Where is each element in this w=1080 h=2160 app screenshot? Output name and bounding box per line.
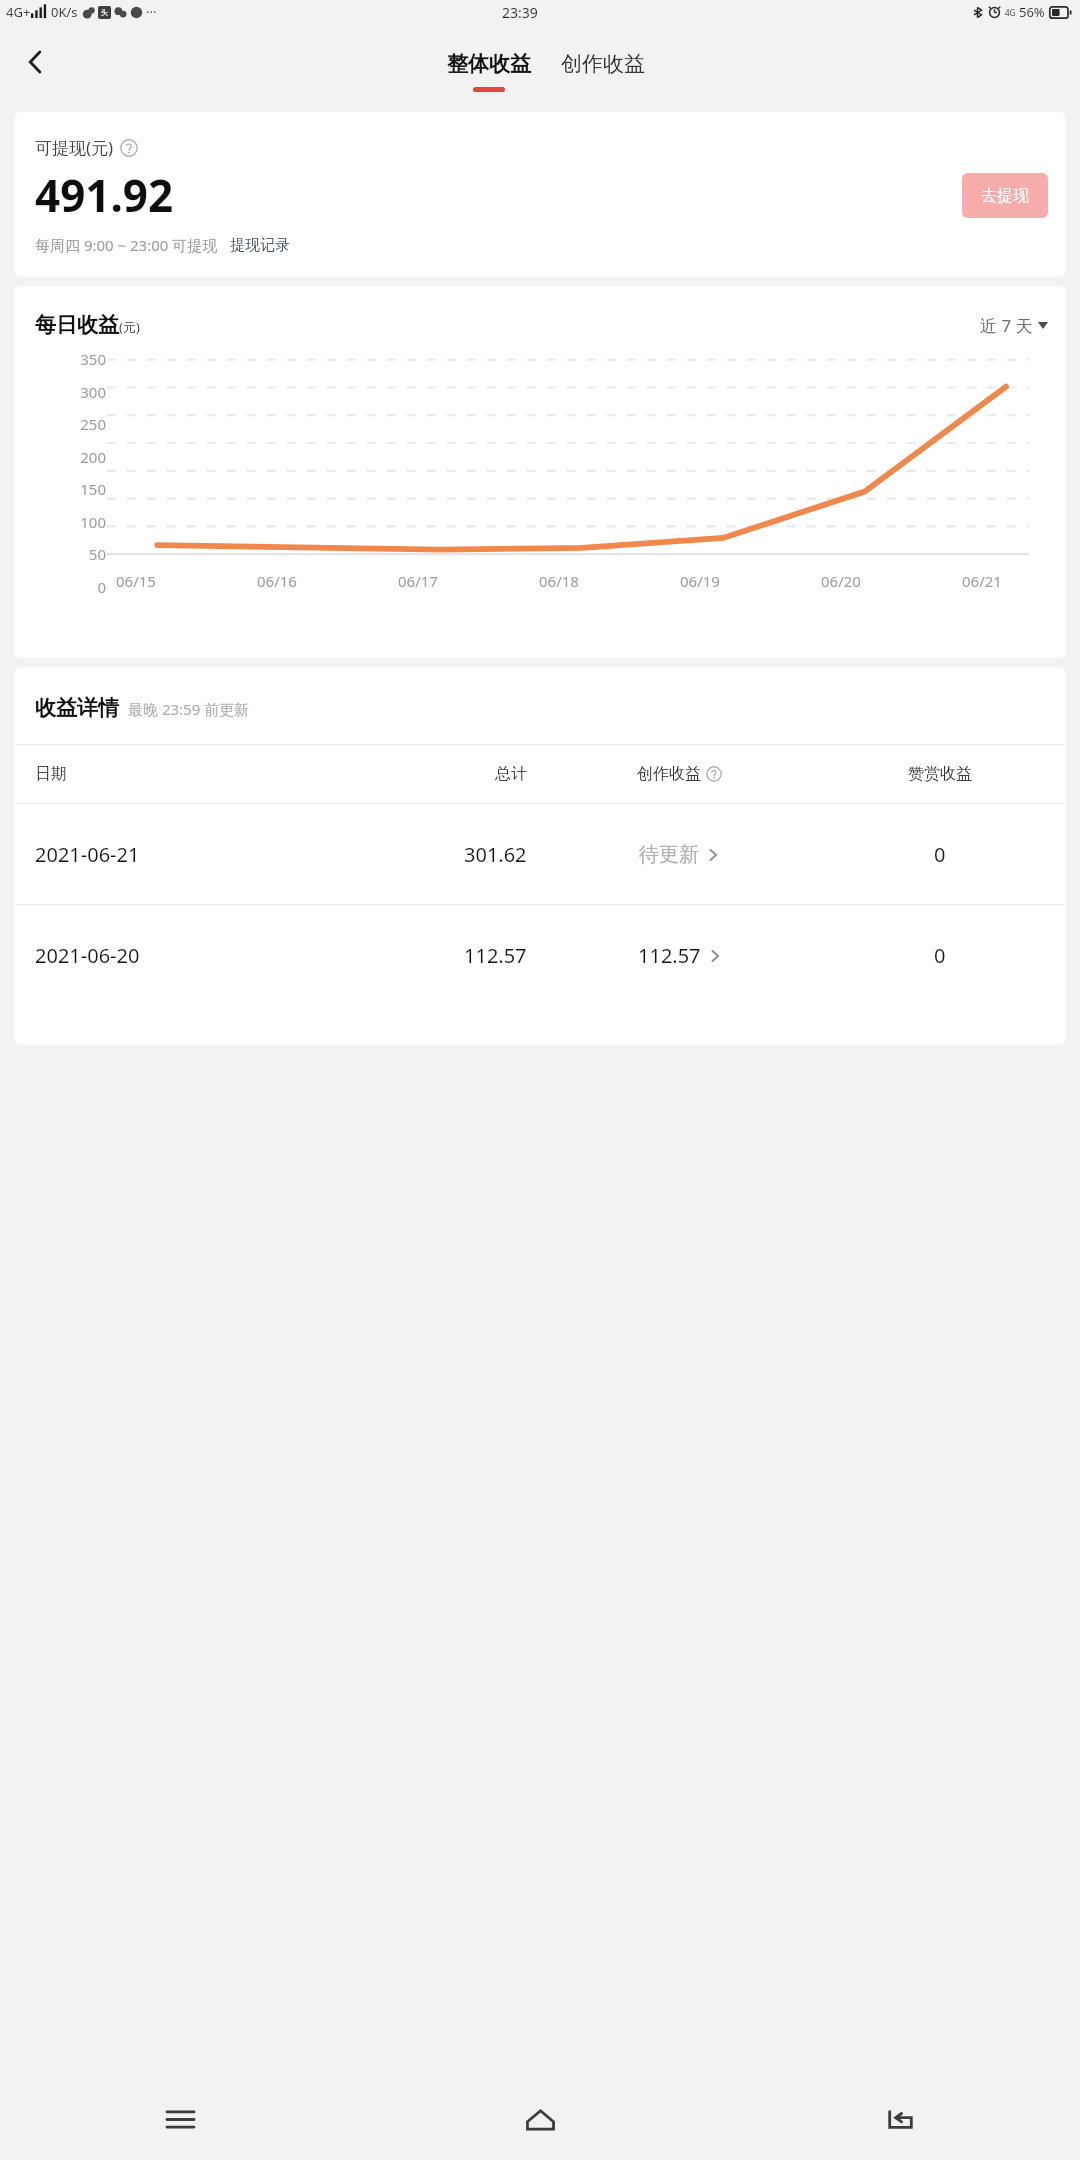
staticText: 日期: [35, 764, 330, 784]
staticText: 总计: [495, 764, 527, 784]
staticText: 去提现: [981, 186, 1029, 206]
staticText: 06/15: [116, 571, 156, 591]
staticText: ···: [146, 3, 157, 21]
staticText: 整体收益: [447, 51, 531, 77]
staticText: 0: [934, 942, 946, 969]
staticText: 最晚 23:59 前更新: [128, 699, 250, 719]
staticText: 06/16: [257, 571, 297, 591]
staticText: 50: [88, 544, 106, 564]
staticText: 300: [80, 382, 106, 402]
button[interactable]: 去提现: [962, 173, 1048, 218]
staticText: 创作收益: [561, 51, 645, 77]
staticText: 250: [80, 414, 106, 434]
button[interactable]: Home: [360, 2078, 720, 2160]
button[interactable]: About withdrawable balance: [120, 139, 138, 157]
button[interactable]: 提现记录: [230, 236, 290, 255]
staticText: 头: [101, 8, 108, 17]
staticText: 200: [80, 447, 106, 467]
button[interactable]: 整体收益: [447, 33, 531, 92]
staticText: 06/18: [539, 571, 579, 591]
staticText: 每周四 9:00 ~ 23:00 可提现: [35, 235, 218, 255]
staticText: 06/20: [821, 571, 861, 591]
staticText: 创作收益: [637, 764, 701, 784]
staticText: 0: [934, 841, 946, 868]
staticText: 赞赏收益: [908, 764, 972, 784]
staticText: 每日收益: [35, 312, 119, 338]
staticText: (元): [119, 318, 140, 336]
staticText: 56%: [1019, 3, 1045, 21]
staticText: 4G: [1005, 7, 1016, 18]
staticText: 06/21: [962, 571, 1002, 591]
staticText: 112.57: [638, 942, 701, 969]
staticText: 06/19: [680, 571, 720, 591]
button[interactable]: 2021-06-20: [14, 905, 1066, 1005]
button[interactable]: Recent apps: [0, 2078, 360, 2160]
staticText: 100: [80, 512, 106, 532]
staticText: 491.92: [35, 165, 174, 225]
button[interactable]: Back: [12, 38, 60, 86]
staticText: 350: [80, 349, 106, 369]
staticText: 150: [80, 479, 106, 499]
button[interactable]: 2021-06-21: [14, 804, 1066, 904]
staticText: 112.57: [464, 942, 527, 969]
staticText: 可提现(元): [35, 136, 114, 159]
button[interactable]: Back: [720, 2078, 1080, 2160]
button[interactable]: 创作收益: [561, 33, 645, 77]
staticText: 23:39: [502, 3, 538, 22]
button[interactable]: 近 7 天: [980, 314, 1048, 338]
staticText: 待更新: [639, 842, 699, 867]
staticText: 0K/s: [51, 3, 78, 21]
staticText: 301.62: [464, 841, 527, 868]
staticText: 收益详情: [35, 695, 119, 721]
button[interactable]: About creation earnings: [706, 766, 722, 782]
staticText: 0: [97, 577, 106, 597]
staticText: 提现记录: [230, 236, 290, 255]
staticText: 2021-06-21: [35, 841, 330, 868]
staticText: 4G+: [6, 3, 31, 21]
staticText: 近 7 天: [980, 314, 1033, 337]
staticText: 2021-06-20: [35, 942, 330, 969]
staticText: 06/17: [398, 571, 438, 591]
